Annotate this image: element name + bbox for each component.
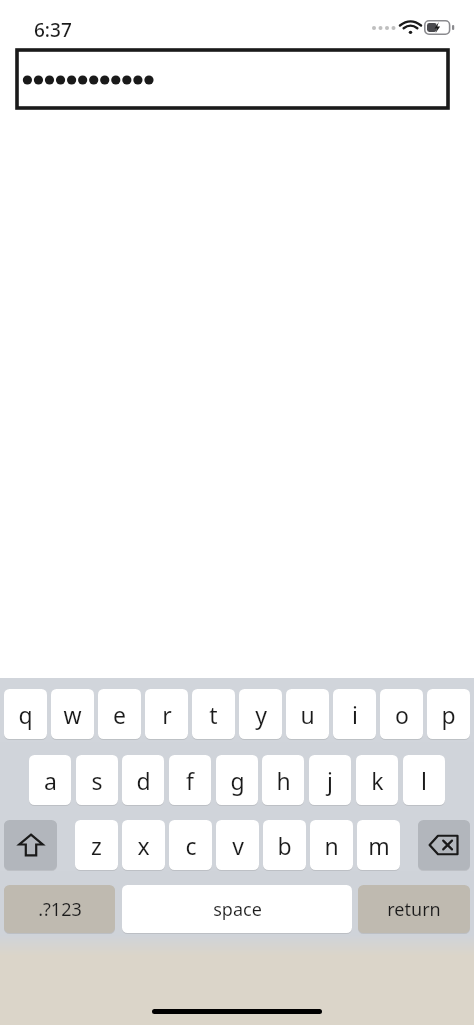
- staticText: y: [255, 699, 267, 730]
- staticText: v: [232, 830, 244, 861]
- staticText: q: [18, 699, 33, 730]
- button[interactable]: Backspace: [418, 820, 470, 870]
- button[interactable]: e: [98, 689, 141, 739]
- staticText: l: [421, 765, 427, 796]
- button[interactable]: w: [51, 689, 94, 739]
- button[interactable]: r: [145, 689, 188, 739]
- staticText: u: [300, 699, 315, 730]
- button[interactable]: p: [427, 689, 470, 739]
- button[interactable]: d: [122, 755, 164, 805]
- staticText: a: [44, 765, 57, 796]
- staticText: s: [91, 765, 103, 796]
- button[interactable]: j: [309, 755, 351, 805]
- button[interactable]: .?123: [4, 885, 115, 933]
- button[interactable]: i: [333, 689, 376, 739]
- staticText: p: [441, 699, 456, 730]
- button[interactable]: return: [358, 885, 470, 933]
- button[interactable]: c: [169, 820, 212, 870]
- staticText: o: [395, 699, 409, 730]
- staticText: b: [277, 830, 292, 861]
- staticText: t: [209, 699, 218, 730]
- button[interactable]: f: [169, 755, 211, 805]
- staticText: return: [387, 897, 441, 922]
- button[interactable]: space: [122, 885, 352, 933]
- button[interactable]: n: [310, 820, 353, 870]
- staticText: d: [136, 765, 151, 796]
- button[interactable]: Shift: [4, 820, 57, 870]
- staticText: h: [276, 765, 291, 796]
- button[interactable]: o: [380, 689, 423, 739]
- staticText: w: [63, 699, 82, 730]
- staticText: f: [186, 765, 194, 796]
- staticText: e: [113, 699, 126, 730]
- button[interactable]: h: [262, 755, 304, 805]
- button[interactable]: y: [239, 689, 282, 739]
- button[interactable]: q: [4, 689, 47, 739]
- staticText: j: [327, 765, 333, 796]
- button[interactable]: u: [286, 689, 329, 739]
- button[interactable]: a: [29, 755, 71, 805]
- button[interactable]: l: [403, 755, 445, 805]
- button[interactable]: b: [263, 820, 306, 870]
- button[interactable]: v: [216, 820, 259, 870]
- staticText: r: [162, 699, 172, 730]
- button[interactable]: m: [357, 820, 400, 870]
- button[interactable]: Password field: [17, 50, 448, 108]
- staticText: x: [137, 830, 150, 861]
- button[interactable]: x: [122, 820, 165, 870]
- staticText: g: [230, 765, 245, 796]
- staticText: space: [213, 897, 262, 922]
- staticText: z: [91, 830, 102, 861]
- button[interactable]: k: [356, 755, 398, 805]
- staticText: k: [371, 765, 384, 796]
- button[interactable]: z: [75, 820, 118, 870]
- staticText: i: [352, 699, 358, 730]
- staticText: .?123: [38, 897, 82, 922]
- button[interactable]: g: [216, 755, 258, 805]
- staticText: n: [324, 830, 339, 861]
- button[interactable]: s: [76, 755, 118, 805]
- staticText: c: [185, 830, 197, 861]
- button[interactable]: t: [192, 689, 235, 739]
- staticText: 6:37: [34, 17, 72, 43]
- staticText: m: [368, 830, 390, 861]
